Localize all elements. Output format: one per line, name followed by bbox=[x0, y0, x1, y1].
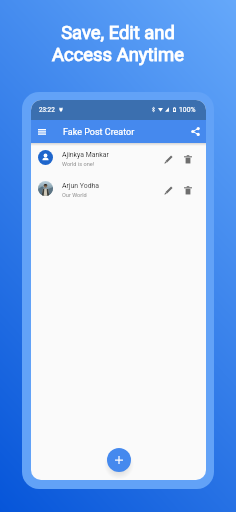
staticText: 23:22 bbox=[39, 106, 55, 113]
button[interactable]: Edit bbox=[159, 150, 177, 168]
staticText: 100% bbox=[179, 106, 196, 114]
button[interactable]: Edit bbox=[159, 181, 177, 199]
staticText: Fake Post Creator bbox=[63, 127, 135, 138]
staticText: Save, Edit and Access Anytime bbox=[0, 22, 236, 66]
staticText: Our World bbox=[62, 192, 87, 199]
button[interactable]: Delete bbox=[179, 150, 197, 168]
staticText: World is one! bbox=[62, 161, 95, 168]
button[interactable]: Add post bbox=[107, 448, 131, 472]
staticText: Ajinkya Mankar bbox=[62, 151, 109, 159]
button[interactable]: Arjun Yodha bbox=[31, 174, 206, 205]
staticText: Arjun Yodha bbox=[62, 182, 100, 190]
button[interactable]: Delete bbox=[179, 181, 197, 199]
button[interactable]: Share bbox=[187, 123, 203, 139]
button[interactable]: Ajinkya Mankar bbox=[31, 143, 206, 174]
button[interactable]: Open navigation menu bbox=[34, 124, 50, 140]
